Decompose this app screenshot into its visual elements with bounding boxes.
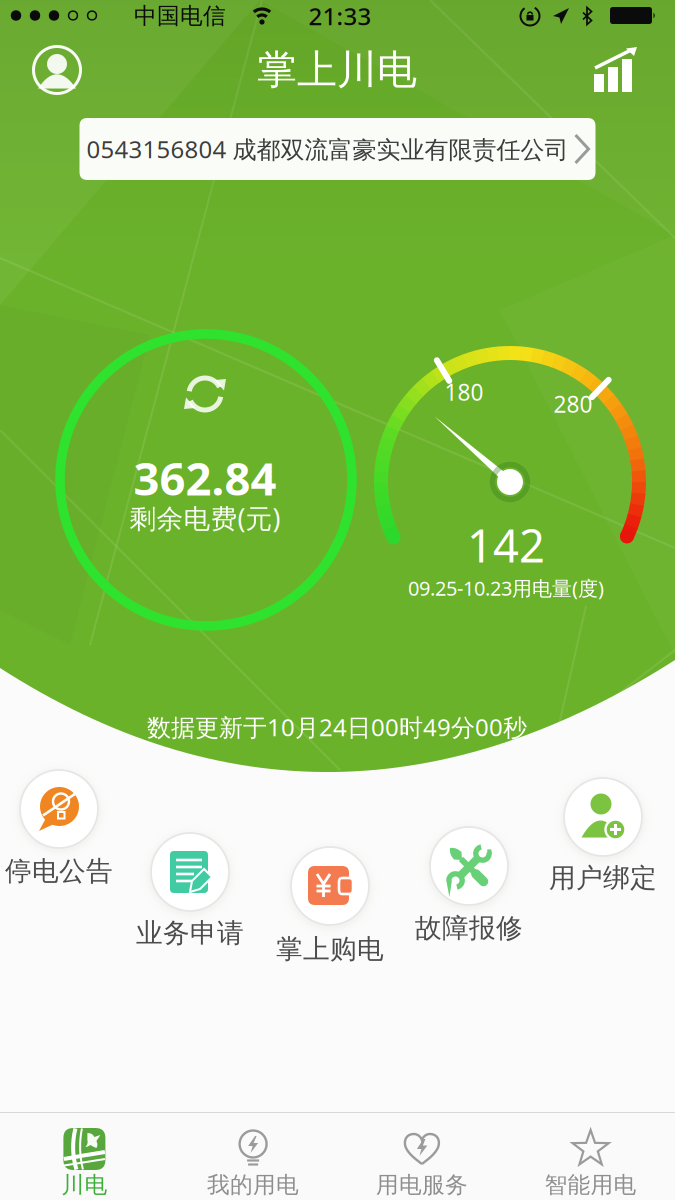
button[interactable]: 我的用电 — [169, 1113, 337, 1199]
staticText: 掌上川电 — [257, 45, 417, 94]
staticText: 智能用电 — [545, 1171, 637, 1199]
staticText: 142 — [467, 515, 545, 575]
staticText: 停电公告 — [5, 855, 113, 887]
staticText: 川电 — [61, 1171, 107, 1199]
staticText: 故障报修 — [415, 912, 523, 944]
staticText: 09.25-10.23用电量(度) — [408, 575, 604, 601]
staticText: 中国电信 — [134, 2, 226, 30]
button[interactable]: 业务申请 — [149, 831, 231, 981]
button[interactable]: 刷新 — [182, 371, 228, 417]
staticText: 我的用电 — [207, 1171, 299, 1199]
staticText: 0543156804 成都双流富豪实业有限责任公司 — [86, 133, 568, 165]
button[interactable]: 用户绑定 — [562, 776, 644, 926]
staticText: 剩余电费(元) — [129, 500, 280, 536]
staticText: 掌上购电 — [276, 933, 384, 965]
staticText: 数据更新于10月24日00时49分00秒 — [147, 711, 527, 743]
staticText: 用户绑定 — [549, 862, 657, 894]
button[interactable]: 智能用电 — [507, 1113, 675, 1199]
button[interactable]: 川电 — [0, 1113, 168, 1199]
staticText: 180 — [444, 377, 483, 407]
staticText: 业务申请 — [136, 917, 244, 949]
button[interactable]: 0543156804 成都双流富豪实业有限责任公司 — [79, 118, 595, 180]
button[interactable]: 掌上购电 — [289, 845, 371, 995]
staticText: 280 — [553, 389, 592, 419]
staticText: 用电服务 — [376, 1171, 468, 1199]
button[interactable]: 用电服务 — [338, 1113, 506, 1199]
button[interactable]: 故障报修 — [428, 825, 510, 975]
button[interactable]: 个人中心 — [31, 44, 83, 96]
staticText: 21:33 — [308, 0, 371, 32]
button[interactable]: 用电分析 — [593, 46, 639, 94]
button[interactable]: 停电公告 — [18, 768, 100, 918]
staticText: 362.84 — [133, 448, 276, 508]
